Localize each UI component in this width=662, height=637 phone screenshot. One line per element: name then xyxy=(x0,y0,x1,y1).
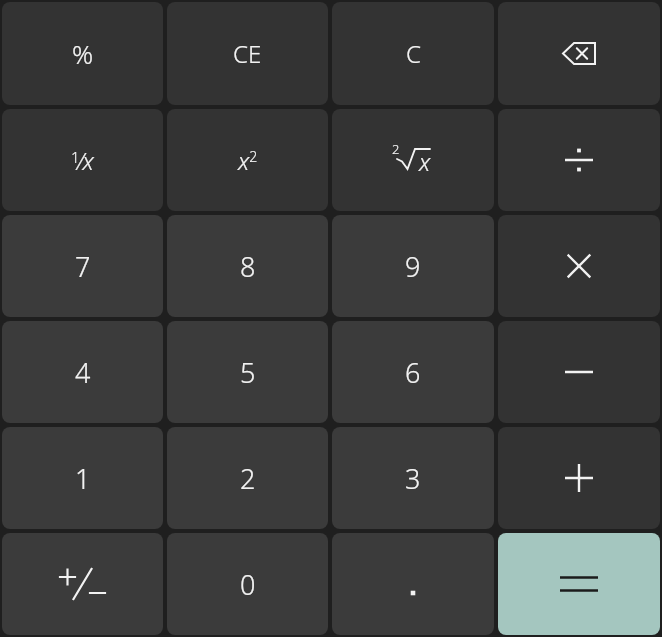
button[interactable]: 1⁄x xyxy=(2,109,163,211)
staticText: 7 xyxy=(75,248,91,285)
button[interactable]: 0 xyxy=(167,533,328,635)
staticText: 0 xyxy=(240,566,256,603)
button[interactable]: 8 xyxy=(167,215,328,317)
button[interactable]: Square root xyxy=(332,109,494,211)
button[interactable]: Backspace xyxy=(498,2,660,105)
staticText: CE xyxy=(233,37,262,70)
staticText: 9 xyxy=(405,248,421,285)
staticText: 3 xyxy=(405,460,421,497)
button[interactable]: C xyxy=(332,2,494,105)
staticText: x xyxy=(419,145,431,178)
staticText: C xyxy=(406,37,421,70)
button[interactable]: CE xyxy=(167,2,328,105)
staticText: % xyxy=(72,36,94,71)
button[interactable]: 6 xyxy=(332,321,494,423)
button[interactable]: Minus xyxy=(498,321,660,423)
button[interactable]: Plus minus xyxy=(2,533,163,635)
button[interactable]: Divide xyxy=(498,109,660,211)
button[interactable]: 3 xyxy=(332,427,494,529)
button[interactable]: 7 xyxy=(2,215,163,317)
button[interactable]: Equals xyxy=(498,533,660,635)
button[interactable]: 5 xyxy=(167,321,328,423)
staticText: 1 xyxy=(75,460,91,497)
button[interactable]: 2 xyxy=(167,427,328,529)
button[interactable]: 4 xyxy=(2,321,163,423)
button[interactable]: 1 xyxy=(2,427,163,529)
button[interactable]: % xyxy=(2,2,163,105)
button[interactable]: Decimal point xyxy=(332,533,494,635)
button[interactable]: Plus xyxy=(498,427,660,529)
staticText: x2 xyxy=(238,144,258,177)
staticText: 6 xyxy=(405,354,421,391)
button[interactable]: x2 xyxy=(167,109,328,211)
button[interactable]: Multiply xyxy=(498,215,660,317)
staticText: 4 xyxy=(75,354,91,391)
staticText: 8 xyxy=(240,248,256,285)
staticText: 5 xyxy=(240,354,256,391)
staticText: 2 xyxy=(240,460,256,497)
staticText: 1⁄x xyxy=(71,144,94,177)
staticText: 2 xyxy=(392,140,400,158)
button[interactable]: 9 xyxy=(332,215,494,317)
